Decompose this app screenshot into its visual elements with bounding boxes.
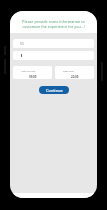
- staticText: customize the experience for you...!: [22, 24, 85, 29]
- staticText: Please provide some information to: [22, 19, 85, 24]
- button[interactable]: Wake Up Time: [13, 66, 52, 79]
- staticText: Sleep Time: [63, 70, 74, 73]
- staticText: 22:00: [71, 75, 79, 79]
- staticText: 09:00: [29, 75, 37, 79]
- button[interactable]: [13, 51, 94, 60]
- staticText: Continue: [46, 88, 63, 93]
- button[interactable]: Sleep Time: [55, 66, 94, 79]
- button[interactable]: 55: [13, 39, 94, 48]
- staticText: Wake Up Time: [21, 70, 36, 73]
- button[interactable]: Continue: [39, 86, 69, 94]
- staticText: 55: [20, 41, 25, 46]
